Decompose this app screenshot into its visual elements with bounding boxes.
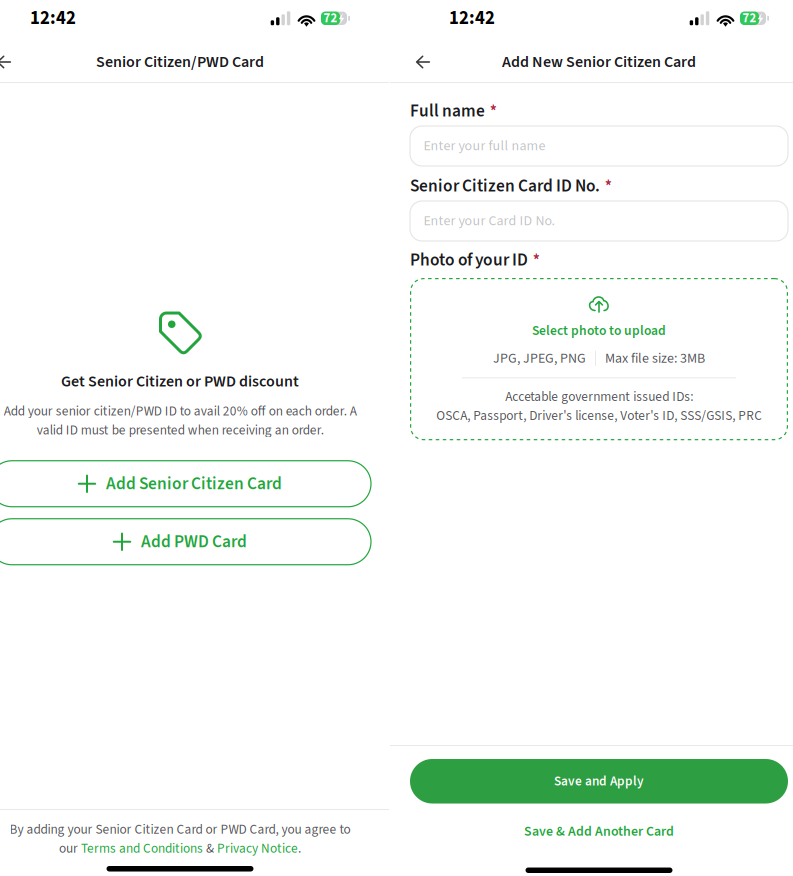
staticText: Get Senior Citizen or PWD discount <box>61 370 299 393</box>
staticText: Senior Citizen Card ID No. <box>410 174 600 198</box>
staticText: Max file size: 3MB <box>605 348 705 368</box>
staticText: Enter your full name <box>423 136 545 156</box>
button[interactable]: Back <box>405 47 441 77</box>
staticText: * <box>605 176 612 196</box>
staticText: Terms and Conditions <box>81 839 203 858</box>
staticText: Select photo to upload <box>532 321 666 340</box>
button[interactable]: Save and Apply <box>410 759 788 803</box>
staticText: & <box>203 839 217 858</box>
staticText: Photo of your ID <box>410 248 528 272</box>
staticText: Add your senior citizen/PWD ID to avail … <box>3 402 356 440</box>
button[interactable]: Enter your Card ID No. <box>410 201 788 241</box>
staticText: JPG, JPEG, PNG <box>493 348 586 368</box>
button[interactable]: Back <box>0 47 22 77</box>
staticText: * <box>533 250 540 270</box>
staticText: Save & Add Another Card <box>524 822 674 841</box>
button[interactable]: Privacy Notice <box>217 839 298 858</box>
staticText: Add PWD Card <box>141 529 247 554</box>
button[interactable]: Terms and Conditions <box>81 839 203 858</box>
button[interactable]: Save & Add Another Card <box>390 821 793 841</box>
button[interactable]: Add Senior Citizen Card <box>0 461 371 507</box>
staticText: 12:42 <box>449 5 495 32</box>
staticText: Add New Senior Citizen Card <box>502 51 696 73</box>
staticText: our <box>59 839 81 858</box>
staticText: * <box>490 101 497 121</box>
button[interactable]: Add PWD Card <box>0 519 371 565</box>
staticText: Senior Citizen/PWD Card <box>96 51 264 73</box>
staticText: Accetable government issued IDs: OSCA, P… <box>436 387 762 425</box>
button[interactable]: Select photo to upload <box>410 278 788 440</box>
staticText: . <box>298 839 301 858</box>
staticText: 12:42 <box>30 5 76 32</box>
staticText: 72 <box>323 9 337 27</box>
staticText: Full name <box>410 99 485 123</box>
staticText: 72 <box>742 9 756 27</box>
staticText: Add Senior Citizen Card <box>106 471 282 496</box>
staticText: Enter your Card ID No. <box>423 211 554 231</box>
staticText: By adding your Senior Citizen Card or PW… <box>9 820 350 839</box>
staticText: Privacy Notice <box>217 839 298 858</box>
staticText: Save and Apply <box>554 772 644 791</box>
button[interactable]: Enter your full name <box>410 126 788 166</box>
